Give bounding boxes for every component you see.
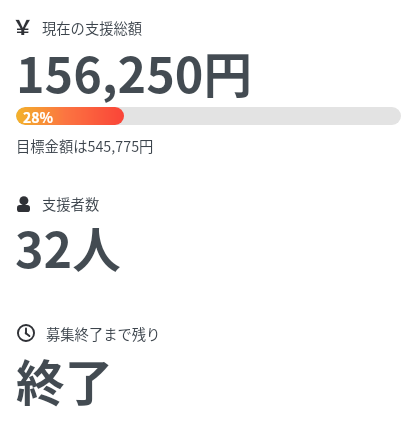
button[interactable]: Total pledged amount (6, 11, 156, 41)
staticText: ￥ (12, 11, 34, 35)
staticText: 現在の支援総額 (42, 17, 143, 38)
staticText: 目標金額は545,775円 (16, 135, 154, 156)
staticText: 支援者数 (42, 193, 100, 214)
staticText: 156,250円 (16, 37, 252, 107)
staticText: 終了 (16, 345, 114, 415)
staticText: 28% (23, 107, 54, 125)
staticText: 32人 (15, 212, 121, 282)
button[interactable]: Number of backers (14, 193, 106, 215)
button[interactable]: 28 percent funded (16, 107, 401, 125)
button[interactable]: Time remaining (14, 322, 162, 344)
staticText: 募集終了まで残り (46, 323, 161, 344)
